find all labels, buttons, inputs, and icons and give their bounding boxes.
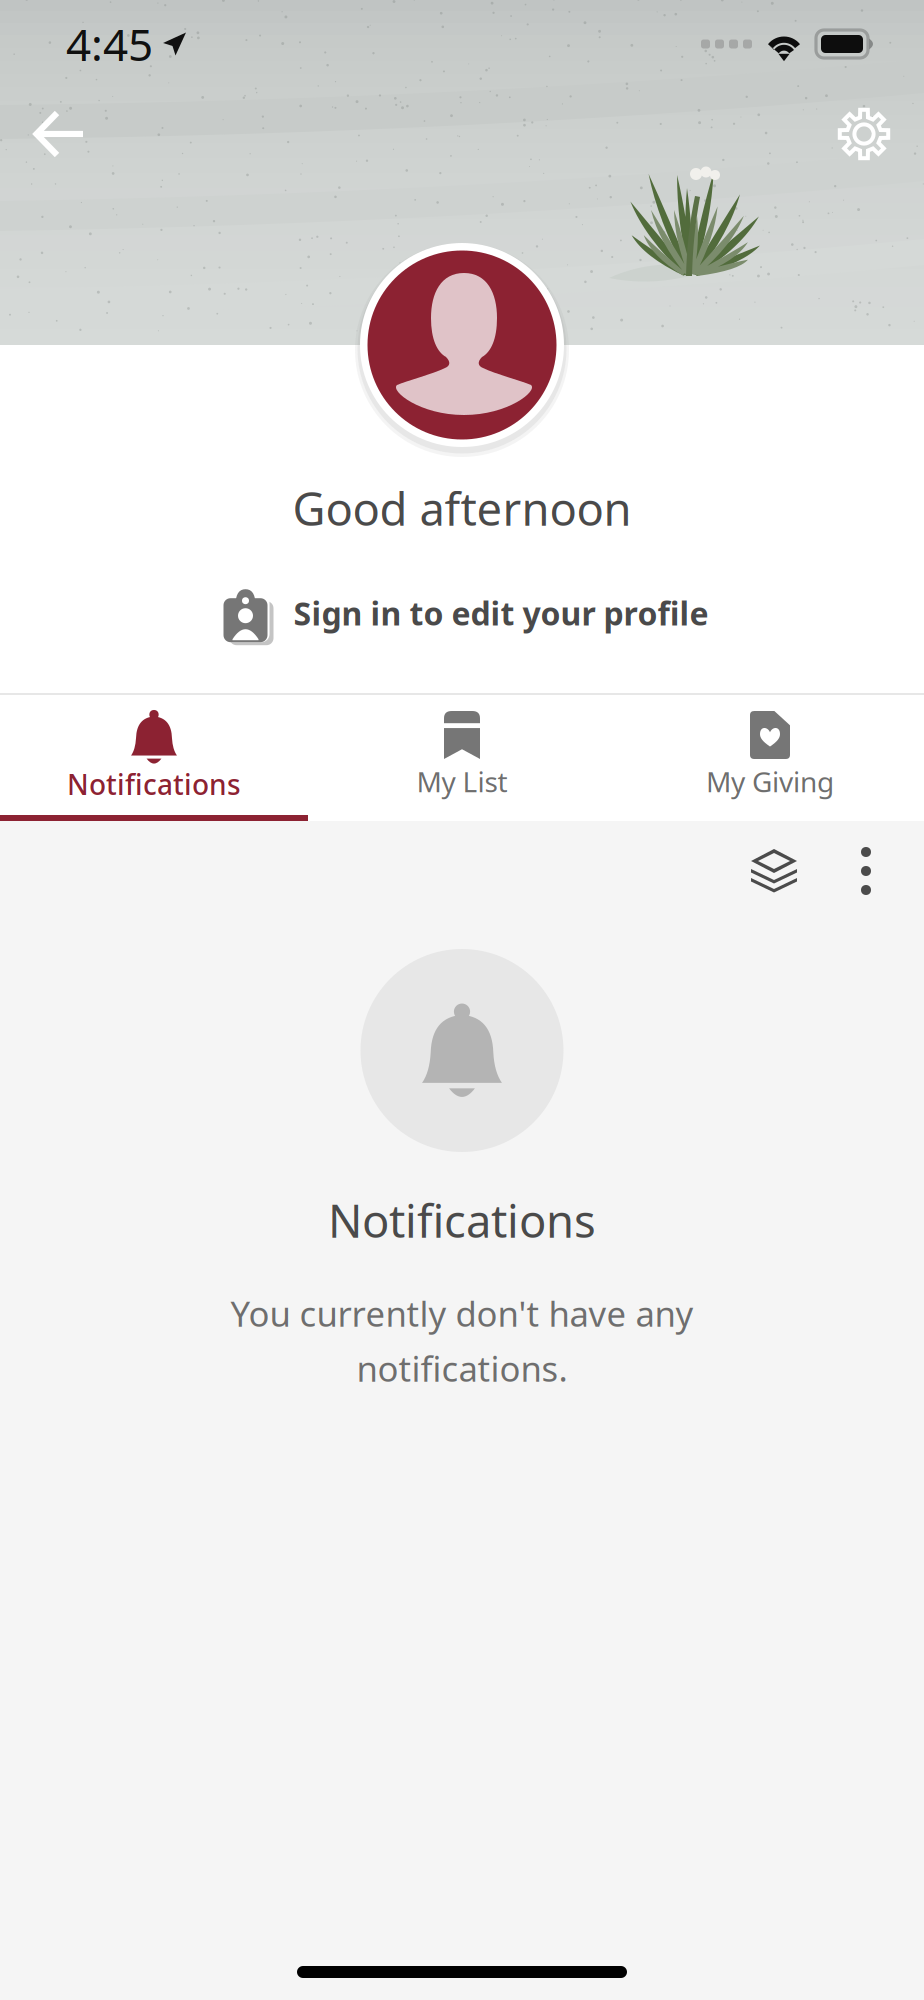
- button[interactable]: Sign in to edit your profile: [195, 570, 728, 656]
- staticText: My Giving: [706, 763, 834, 800]
- button[interactable]: Back: [14, 88, 106, 180]
- staticText: notifications.: [356, 1345, 567, 1391]
- button[interactable]: Settings: [818, 88, 910, 180]
- staticText: Sign in to edit your profile: [293, 592, 708, 634]
- staticText: My List: [416, 763, 507, 800]
- staticText: Good afternoon: [292, 478, 631, 538]
- staticText: You currently don't have any: [230, 1290, 693, 1336]
- button[interactable]: My Giving: [616, 695, 924, 821]
- button[interactable]: Layers: [728, 825, 820, 917]
- staticText: Notifications: [328, 1190, 596, 1250]
- staticText: Notifications: [67, 765, 241, 803]
- button[interactable]: My List: [308, 695, 616, 821]
- button[interactable]: Notifications: [0, 695, 308, 821]
- button[interactable]: More options: [820, 825, 912, 917]
- staticText: 4:45: [66, 15, 153, 73]
